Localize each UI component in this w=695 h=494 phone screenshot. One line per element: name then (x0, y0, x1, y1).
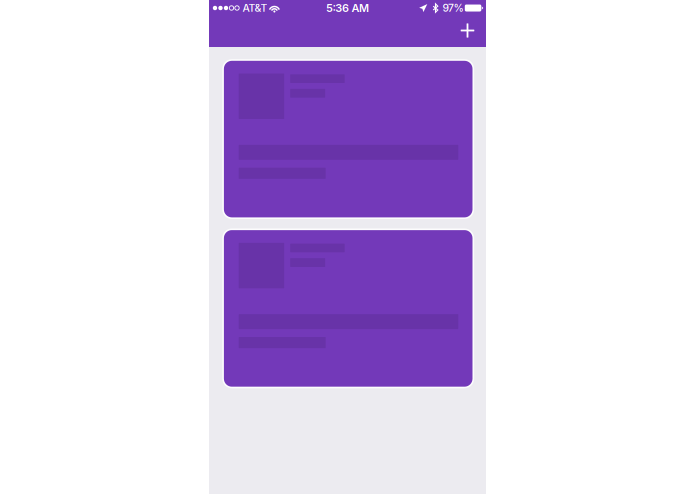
button[interactable] (222, 228, 474, 388)
staticText: 5:36 AM (326, 1, 369, 15)
staticText: AT&T (242, 2, 267, 14)
button[interactable]: Add (451, 16, 483, 45)
button[interactable] (222, 59, 474, 219)
staticText: 97% (442, 2, 463, 14)
